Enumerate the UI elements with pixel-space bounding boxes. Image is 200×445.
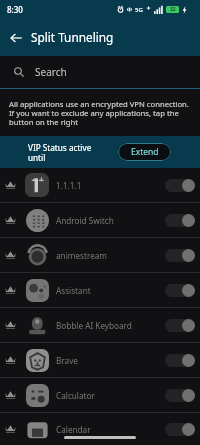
staticText: 8:30: [7, 4, 23, 15]
button[interactable]: Toggle app: [165, 419, 195, 439]
staticText: Calendar: [56, 424, 91, 435]
button[interactable]: Calculator: [0, 378, 200, 412]
button[interactable]: Toggle app: [165, 280, 195, 300]
staticText: Assistant: [56, 285, 91, 296]
button[interactable]: Back: [0, 22, 31, 53]
staticText: Search: [35, 65, 67, 79]
button[interactable]: Toggle app: [165, 210, 195, 230]
staticText: All applications use an encrypted VPN co…: [9, 99, 189, 127]
staticText: 5G: [135, 6, 143, 14]
staticText: Split Tunneling: [31, 29, 114, 45]
button[interactable]: Calendar: [0, 413, 200, 445]
button[interactable]: Toggle app: [165, 245, 195, 265]
button[interactable]: Toggle app: [165, 350, 195, 370]
staticText: Android Switch: [56, 215, 114, 226]
button[interactable]: Extend: [118, 143, 171, 161]
button[interactable]: Bobble AI Keyboard: [0, 308, 200, 342]
button[interactable]: Android Switch: [0, 203, 200, 237]
staticText: VIP Status active until: [28, 142, 92, 163]
staticText: Bobble AI Keyboard: [56, 320, 132, 331]
staticText: 1.1.1.1: [56, 180, 82, 191]
staticText: 32: [170, 6, 176, 13]
button[interactable]: Toggle app: [165, 175, 195, 195]
staticText: Extend: [131, 146, 159, 158]
button[interactable]: Assistant: [0, 273, 200, 307]
button[interactable]: Search: [0, 56, 200, 88]
staticText: animestream: [56, 250, 107, 261]
button[interactable]: Brave: [0, 343, 200, 377]
button[interactable]: Toggle app: [165, 315, 195, 335]
button[interactable]: animestream: [0, 238, 200, 272]
button[interactable]: 1.1.1.1: [0, 168, 200, 202]
button[interactable]: Toggle app: [165, 385, 195, 405]
staticText: Brave: [56, 355, 78, 366]
staticText: Calculator: [56, 390, 95, 401]
